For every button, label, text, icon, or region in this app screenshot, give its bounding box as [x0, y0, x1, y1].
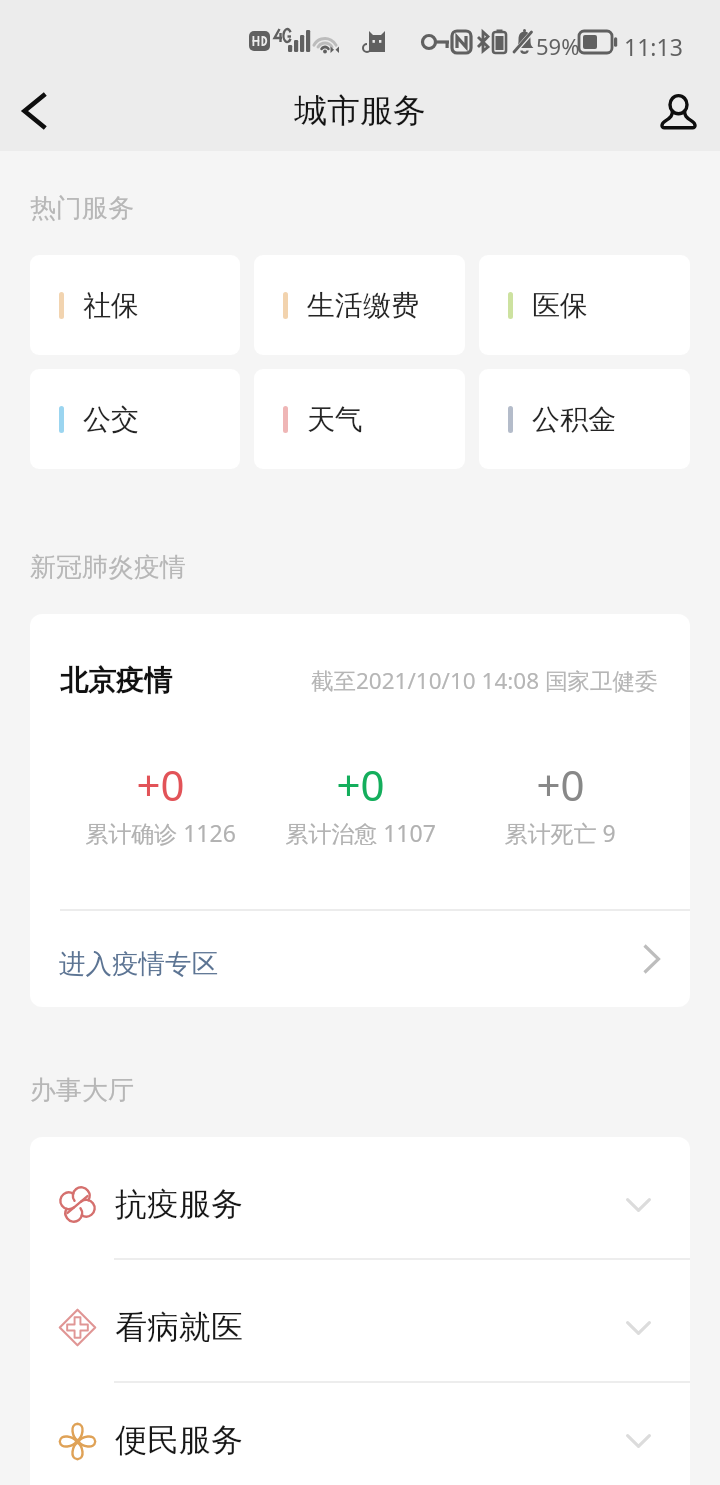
staticText: 天气	[307, 402, 363, 437]
staticText: 社保	[83, 288, 139, 323]
button[interactable]: 社保	[30, 255, 240, 355]
button[interactable]: Back	[4, 81, 64, 141]
staticText: 59%	[536, 31, 580, 61]
button[interactable]: 看病就医	[30, 1260, 690, 1381]
staticText: 办事大厅	[30, 1074, 134, 1107]
button[interactable]: 医保	[479, 255, 690, 355]
staticText: 公交	[83, 402, 139, 437]
button[interactable]: 公积金	[479, 369, 690, 469]
button[interactable]: Profile	[648, 81, 708, 141]
staticText: 累计死亡 9	[504, 817, 616, 848]
staticText: 截至2021/10/10 14:08 国家卫健委	[311, 665, 658, 696]
staticText: 新冠肺炎疫情	[30, 551, 186, 584]
staticText: +0	[336, 756, 385, 813]
staticText: 医保	[532, 288, 588, 323]
staticText: 进入疫情专区	[59, 947, 218, 980]
button[interactable]: 进入疫情专区	[30, 911, 690, 1007]
staticText: 累计治愈 1107	[285, 817, 436, 848]
staticText: 累计确诊 1126	[85, 817, 236, 848]
button[interactable]: 天气	[254, 369, 465, 469]
staticText: 北京疫情	[60, 663, 172, 698]
staticText: 公积金	[532, 402, 616, 437]
button[interactable]: 抗疫服务	[30, 1137, 690, 1258]
staticText: 抗疫服务	[115, 1184, 243, 1224]
staticText: 城市服务	[294, 90, 426, 132]
button[interactable]: 便民服务	[30, 1383, 690, 1485]
button[interactable]: 公交	[30, 369, 240, 469]
staticText: 便民服务	[115, 1420, 243, 1460]
staticText: 生活缴费	[307, 288, 419, 323]
staticText: +0	[136, 756, 185, 813]
staticText: 11:13	[624, 31, 683, 62]
staticText: +0	[536, 756, 585, 813]
staticText: 看病就医	[115, 1307, 243, 1347]
staticText: 热门服务	[30, 192, 134, 225]
button[interactable]: 生活缴费	[254, 255, 465, 355]
